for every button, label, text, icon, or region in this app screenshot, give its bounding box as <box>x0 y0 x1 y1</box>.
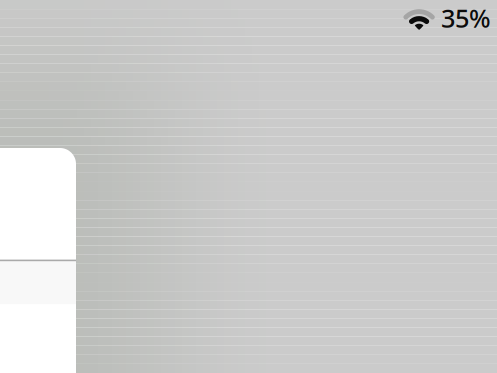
button[interactable]: List row <box>0 148 76 260</box>
button[interactable]: Wi-Fi connected, battery 35 percent <box>407 4 493 34</box>
staticText: 35% <box>441 1 491 35</box>
button[interactable]: Selected list row <box>0 260 76 303</box>
